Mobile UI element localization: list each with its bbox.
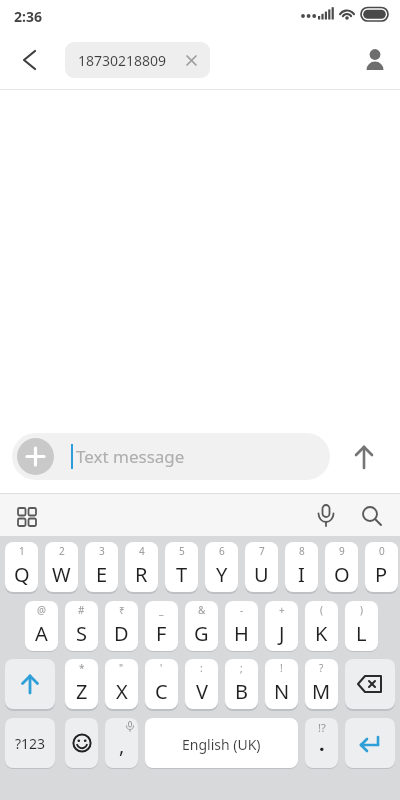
staticText: B [235,678,248,705]
button[interactable] [345,659,395,709]
button[interactable]: ' [145,659,178,709]
staticText: !? [318,720,326,735]
staticText: ) [360,603,363,617]
staticText: 2:36 [14,7,42,26]
staticText: ₹ [119,603,125,617]
staticText: ! [280,661,283,675]
staticText: X [116,678,128,705]
staticText: 0 [379,544,385,558]
staticText: Q [14,561,30,588]
staticText: Y [216,561,228,588]
staticText: 5 [179,544,185,558]
button[interactable]: 18730218809 [65,42,210,78]
button[interactable] [5,659,55,709]
staticText: R [135,561,148,588]
button[interactable]: ) [345,601,378,651]
staticText: 18730218809 [78,51,167,70]
button[interactable]: 5 [165,542,198,592]
staticText: V [196,678,208,705]
staticText: _ [159,603,164,617]
button[interactable]: 9 [325,542,358,592]
staticText: E [96,561,108,588]
staticText: 2 [59,544,65,558]
button[interactable]: # [65,601,98,651]
button[interactable] [358,44,392,76]
button[interactable]: 8 [285,542,318,592]
staticText: C [155,678,168,705]
button[interactable] [356,502,388,532]
button[interactable]: 1 [5,542,38,592]
staticText: G [194,620,209,647]
staticText: - [240,603,244,617]
staticText: : [200,661,203,675]
staticText: L [356,620,367,647]
staticText: ? [319,661,324,675]
staticText: English (UK) [182,735,261,754]
button[interactable] [10,506,46,530]
button[interactable] [344,437,384,477]
staticText: ?123 [15,734,46,753]
staticText: + [279,603,285,617]
button[interactable]: + [265,601,298,651]
staticText: @ [37,603,46,617]
button[interactable]: ₹ [105,601,138,651]
staticText: ( [320,603,323,617]
staticText: " [119,661,124,675]
staticText: 4 [139,544,145,558]
button[interactable]: 4 [125,542,158,592]
staticText: 8 [299,544,305,558]
staticText: Z [76,678,88,705]
button[interactable]: 0 [365,542,398,592]
staticText: 9 [339,544,345,558]
staticText: 1 [19,544,25,558]
button[interactable]: Text message [12,433,330,480]
staticText: 6 [219,544,225,558]
staticText: ; [240,661,243,675]
button[interactable]: " [105,659,138,709]
button[interactable] [65,718,98,768]
button[interactable]: ( [305,601,338,651]
button[interactable]: 2 [45,542,78,592]
button[interactable]: : [185,659,218,709]
button[interactable]: * [65,659,98,709]
button[interactable] [8,44,52,76]
staticText: . [319,730,325,757]
button[interactable]: & [185,601,218,651]
staticText: W [52,561,71,588]
staticText: K [315,620,328,647]
staticText: M [312,678,331,705]
staticText: # [78,603,85,617]
staticText: D [114,620,129,647]
button[interactable]: @ [25,601,58,651]
button[interactable]: ; [225,659,258,709]
staticText: ' [160,661,163,675]
staticText: F [156,620,167,647]
staticText: U [254,561,269,588]
staticText: & [198,603,206,617]
staticText: T [176,561,188,588]
staticText: H [234,620,249,647]
staticText: 3 [99,544,105,558]
button[interactable]: ?123 [5,718,55,768]
staticText: P [375,561,388,588]
button[interactable] [310,502,342,532]
staticText: , [119,732,125,759]
button[interactable]: 7 [245,542,278,592]
staticText: * [79,661,85,675]
button[interactable]: !? [305,718,338,768]
button[interactable]: ! [265,659,298,709]
button[interactable]: English (UK) [145,718,298,768]
button[interactable]: - [225,601,258,651]
button[interactable]: , [105,718,138,768]
staticText: S [76,620,87,647]
staticText: O [334,561,350,588]
staticText: I [298,561,305,588]
staticText: Text message [76,445,185,468]
button[interactable]: ? [305,659,338,709]
staticText: N [274,678,290,705]
button[interactable]: _ [145,601,178,651]
button[interactable]: 6 [205,542,238,592]
staticText: J [279,620,285,647]
button[interactable] [345,718,395,768]
button[interactable]: 3 [85,542,118,592]
